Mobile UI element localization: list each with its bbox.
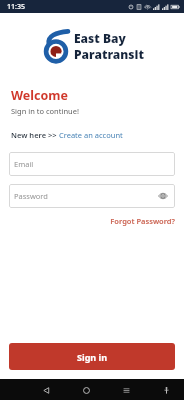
button[interactable]: Password [9, 184, 175, 208]
button[interactable]: Sign in [9, 343, 175, 370]
staticText: Password [14, 191, 48, 201]
staticText: Sign in [77, 351, 108, 363]
button[interactable]: Switch input method [158, 382, 174, 398]
button[interactable]: Show password [156, 189, 170, 203]
staticText: Welcome [11, 87, 68, 104]
staticText: Create an account [59, 130, 123, 140]
staticText: Paratransit [74, 46, 144, 62]
button[interactable]: Forgot Password? [110, 216, 175, 226]
button[interactable]: Recent apps [118, 382, 134, 398]
button[interactable]: Back [38, 382, 54, 398]
button[interactable]: Create an account [59, 130, 123, 140]
staticText: Sign in to continue! [11, 106, 79, 116]
staticText: East Bay [74, 30, 126, 46]
staticText: New here >> [11, 130, 59, 140]
staticText: Email [14, 159, 34, 169]
button[interactable]: Home [78, 382, 94, 398]
button[interactable]: Email [9, 152, 175, 176]
staticText: Forgot Password? [110, 216, 175, 226]
staticText: 11:35 [7, 2, 25, 12]
